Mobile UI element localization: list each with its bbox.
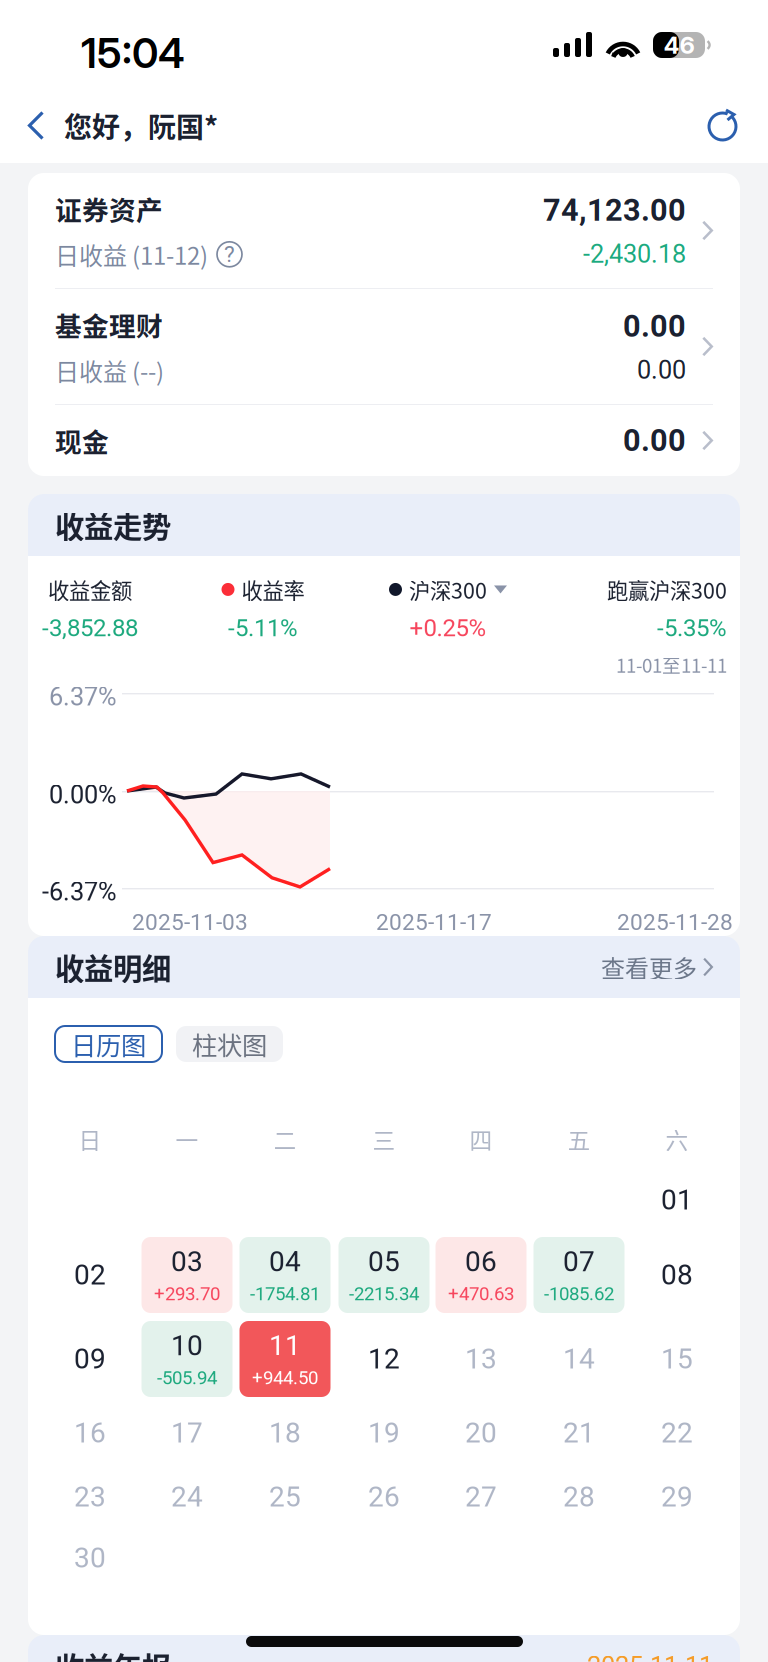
staticText: 收益年报 <box>55 1645 171 1662</box>
staticText: 05 <box>368 1245 400 1278</box>
staticText: 25 <box>269 1481 301 1513</box>
staticText: 证券资产 <box>55 189 163 228</box>
button[interactable]: 08 <box>631 1237 722 1313</box>
button[interactable]: 现金 <box>28 405 740 476</box>
button[interactable]: 21 <box>533 1395 624 1471</box>
staticText: 0.00 <box>637 355 686 385</box>
staticText: 29 <box>661 1481 693 1513</box>
staticText: 收益明细 <box>55 946 171 988</box>
staticText: 18 <box>269 1417 301 1449</box>
staticText: 19 <box>368 1417 400 1449</box>
staticText: 0.00% <box>49 780 117 810</box>
staticText: 16 <box>74 1417 106 1449</box>
button[interactable]: 查看更多 <box>601 950 713 984</box>
staticText: 沪深300 <box>409 574 487 605</box>
staticText: 27 <box>465 1481 497 1513</box>
button[interactable]: 证券资产 <box>28 173 740 288</box>
staticText: 03 <box>171 1245 203 1278</box>
button[interactable]: 29 <box>631 1459 722 1535</box>
staticText: -505.94 <box>157 1367 217 1389</box>
button[interactable]: 22 <box>631 1395 722 1471</box>
button[interactable]: 03 <box>141 1237 232 1313</box>
staticText: -1085.62 <box>544 1283 614 1305</box>
staticText: 46 <box>663 30 694 59</box>
button[interactable]: 18 <box>239 1395 330 1471</box>
button[interactable]: 17 <box>141 1395 232 1471</box>
staticText: 06 <box>465 1245 497 1278</box>
button[interactable]: 07 <box>533 1237 624 1313</box>
staticText: 11-01至11-11 <box>616 651 727 678</box>
button[interactable]: 25 <box>239 1459 330 1535</box>
button[interactable]: 14 <box>533 1321 624 1397</box>
button[interactable]: 28 <box>533 1459 624 1535</box>
staticText: 21 <box>563 1417 595 1449</box>
button[interactable]: 11 <box>239 1321 330 1397</box>
staticText: 日历图 <box>71 1026 146 1062</box>
staticText: 13 <box>465 1343 497 1375</box>
staticText: 02 <box>74 1259 106 1291</box>
staticText: -3,852.88 <box>42 614 138 642</box>
staticText: +944.50 <box>252 1367 318 1389</box>
staticText: 10 <box>171 1329 203 1362</box>
staticText: +293.70 <box>154 1283 220 1305</box>
staticText: 收益率 <box>241 574 304 605</box>
staticText: +470.63 <box>448 1283 514 1305</box>
staticText: 2025-11-03 <box>132 909 248 936</box>
button[interactable]: 27 <box>435 1459 526 1535</box>
staticText: 74,123.00 <box>543 192 686 228</box>
button[interactable]: 20 <box>435 1395 526 1471</box>
staticText: 现金 <box>55 421 109 460</box>
staticText: 28 <box>563 1481 595 1513</box>
button[interactable]: 16 <box>44 1395 135 1471</box>
staticText: 6.37% <box>49 682 117 712</box>
staticText: 收益走势 <box>55 504 171 546</box>
staticText: 2025-11-17 <box>376 909 492 936</box>
staticText: 15 <box>661 1343 693 1375</box>
button[interactable]: 10 <box>141 1321 232 1397</box>
staticText: 日收益 (11-12) <box>55 237 208 272</box>
button[interactable]: 01 <box>631 1162 722 1238</box>
button[interactable]: 09 <box>44 1321 135 1397</box>
staticText: 查看更多 <box>601 950 697 984</box>
staticText: 15:04 <box>81 28 185 78</box>
staticText: 收益金额 <box>48 574 132 605</box>
staticText: 14 <box>563 1343 595 1375</box>
staticText: 20 <box>465 1417 497 1449</box>
staticText: 四 <box>469 1123 492 1155</box>
staticText: 柱状图 <box>192 1026 267 1062</box>
button[interactable]: 13 <box>435 1321 526 1397</box>
staticText: 一 <box>175 1123 198 1155</box>
button[interactable]: 日历图 <box>55 1026 162 1062</box>
button[interactable]: 基金理财 <box>28 289 740 404</box>
button[interactable]: 23 <box>44 1459 135 1535</box>
staticText: 2025-11-11 <box>587 1651 713 1662</box>
staticText: 23 <box>74 1481 106 1513</box>
staticText: 08 <box>661 1259 693 1291</box>
staticText: 26 <box>368 1481 400 1513</box>
button[interactable]: 24 <box>141 1459 232 1535</box>
button[interactable]: 02 <box>44 1237 135 1313</box>
button[interactable]: 05 <box>338 1237 429 1313</box>
button[interactable]: 04 <box>239 1237 330 1313</box>
staticText: 12 <box>368 1343 400 1375</box>
button[interactable]: Back <box>8 86 64 165</box>
button[interactable]: 19 <box>338 1395 429 1471</box>
button[interactable]: 30 <box>44 1520 135 1596</box>
staticText: ? <box>224 241 235 268</box>
staticText: 11 <box>269 1329 301 1362</box>
button[interactable]: 柱状图 <box>176 1026 283 1062</box>
staticText: 09 <box>74 1343 106 1375</box>
button[interactable]: 26 <box>338 1459 429 1535</box>
staticText: -2215.34 <box>349 1283 419 1305</box>
staticText: 0.00 <box>623 422 686 458</box>
button[interactable]: 15 <box>631 1321 722 1397</box>
staticText: 30 <box>74 1542 106 1574</box>
staticText: 24 <box>171 1481 203 1513</box>
staticText: -6.37% <box>42 877 117 907</box>
staticText: +0.25% <box>409 614 486 642</box>
button[interactable]: 12 <box>338 1321 429 1397</box>
staticText: 22 <box>661 1417 693 1449</box>
button[interactable]: Refresh <box>690 86 756 165</box>
staticText: 跑赢沪深300 <box>607 574 727 605</box>
button[interactable]: 06 <box>435 1237 526 1313</box>
